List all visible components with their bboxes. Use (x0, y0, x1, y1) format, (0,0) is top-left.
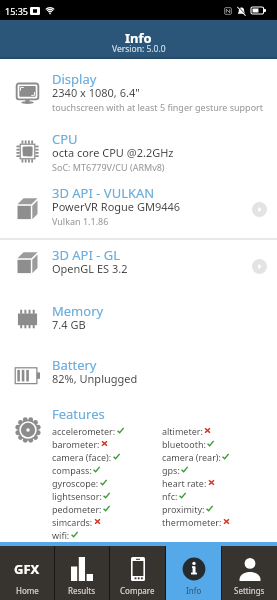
staticText: pedometer: (52, 503, 102, 515)
staticText: proximity: (162, 503, 205, 515)
staticText: 7.4 GB (52, 317, 86, 332)
staticText: accelerometer: (52, 425, 116, 437)
staticText: CPU (52, 130, 78, 148)
button[interactable]: Results (55, 546, 109, 600)
button[interactable]: 3D API - GL (0, 240, 277, 284)
button[interactable]: Compare (110, 546, 165, 600)
staticText: bluetooth: (162, 438, 206, 450)
button[interactable]: Settings (222, 546, 277, 600)
staticText: PowerVR Rogue GM9446 (52, 199, 181, 214)
other: Info (182, 557, 206, 581)
staticText: nfc: (162, 490, 178, 502)
staticText: simcards: (52, 516, 93, 528)
other: Details (252, 259, 267, 274)
staticText: Results (68, 585, 96, 596)
staticText: heart rate: (162, 477, 207, 489)
other: Settings (238, 557, 262, 581)
button[interactable]: CPU (0, 124, 277, 178)
staticText: 3D API - VULKAN (52, 184, 155, 202)
staticText: 82%, Unplugged (52, 371, 138, 386)
staticText: camera (face): (52, 451, 112, 463)
staticText: Battery (52, 356, 97, 374)
staticText: 15:35 (5, 5, 29, 17)
button[interactable]: Memory (0, 296, 277, 340)
staticText: Compare (120, 585, 155, 596)
staticText: octa core CPU @2.2GHz (52, 145, 174, 160)
staticText: altimeter: (162, 425, 203, 437)
staticText: Settings (234, 585, 265, 596)
staticText: GFX (14, 560, 40, 578)
staticText: Home (16, 585, 39, 596)
staticText: 3D API - GL (52, 246, 121, 264)
staticText: Vulkan 1.1.86 (52, 215, 109, 227)
staticText: Info (125, 29, 152, 47)
staticText: OpenGL ES 3.2 (52, 261, 128, 276)
staticText: Version: 5.0.0 (112, 43, 166, 55)
staticText: camera (rear): (162, 451, 221, 463)
staticText: thermometer: (162, 516, 222, 528)
staticText: Memory (52, 302, 104, 320)
staticText: touchscreen with at least 5 finger gestu… (52, 101, 264, 113)
staticText: gps: (162, 464, 180, 476)
button[interactable]: Info (166, 546, 221, 600)
other: Home (7, 557, 47, 581)
button[interactable]: 3D API - VULKAN (0, 181, 277, 235)
staticText: wifi: (52, 529, 70, 541)
other: Results (70, 557, 94, 581)
other: Compare (126, 557, 150, 581)
button[interactable]: Home (0, 546, 54, 600)
other: Details (252, 202, 267, 217)
staticText: Features (52, 405, 105, 423)
staticText: SoC: MT6779V/CU (ARMv8) (52, 161, 165, 173)
button[interactable]: Battery (0, 353, 277, 397)
staticText: compass: (52, 464, 92, 476)
button[interactable]: Display (0, 66, 277, 120)
staticText: 2340 x 1080, 6.4" (52, 85, 140, 100)
staticText: Info (186, 585, 202, 596)
staticText: barometer: (52, 438, 100, 450)
staticText: lightsensor: (52, 490, 102, 502)
staticText: Display (52, 70, 97, 88)
staticText: gyroscope: (52, 477, 99, 489)
